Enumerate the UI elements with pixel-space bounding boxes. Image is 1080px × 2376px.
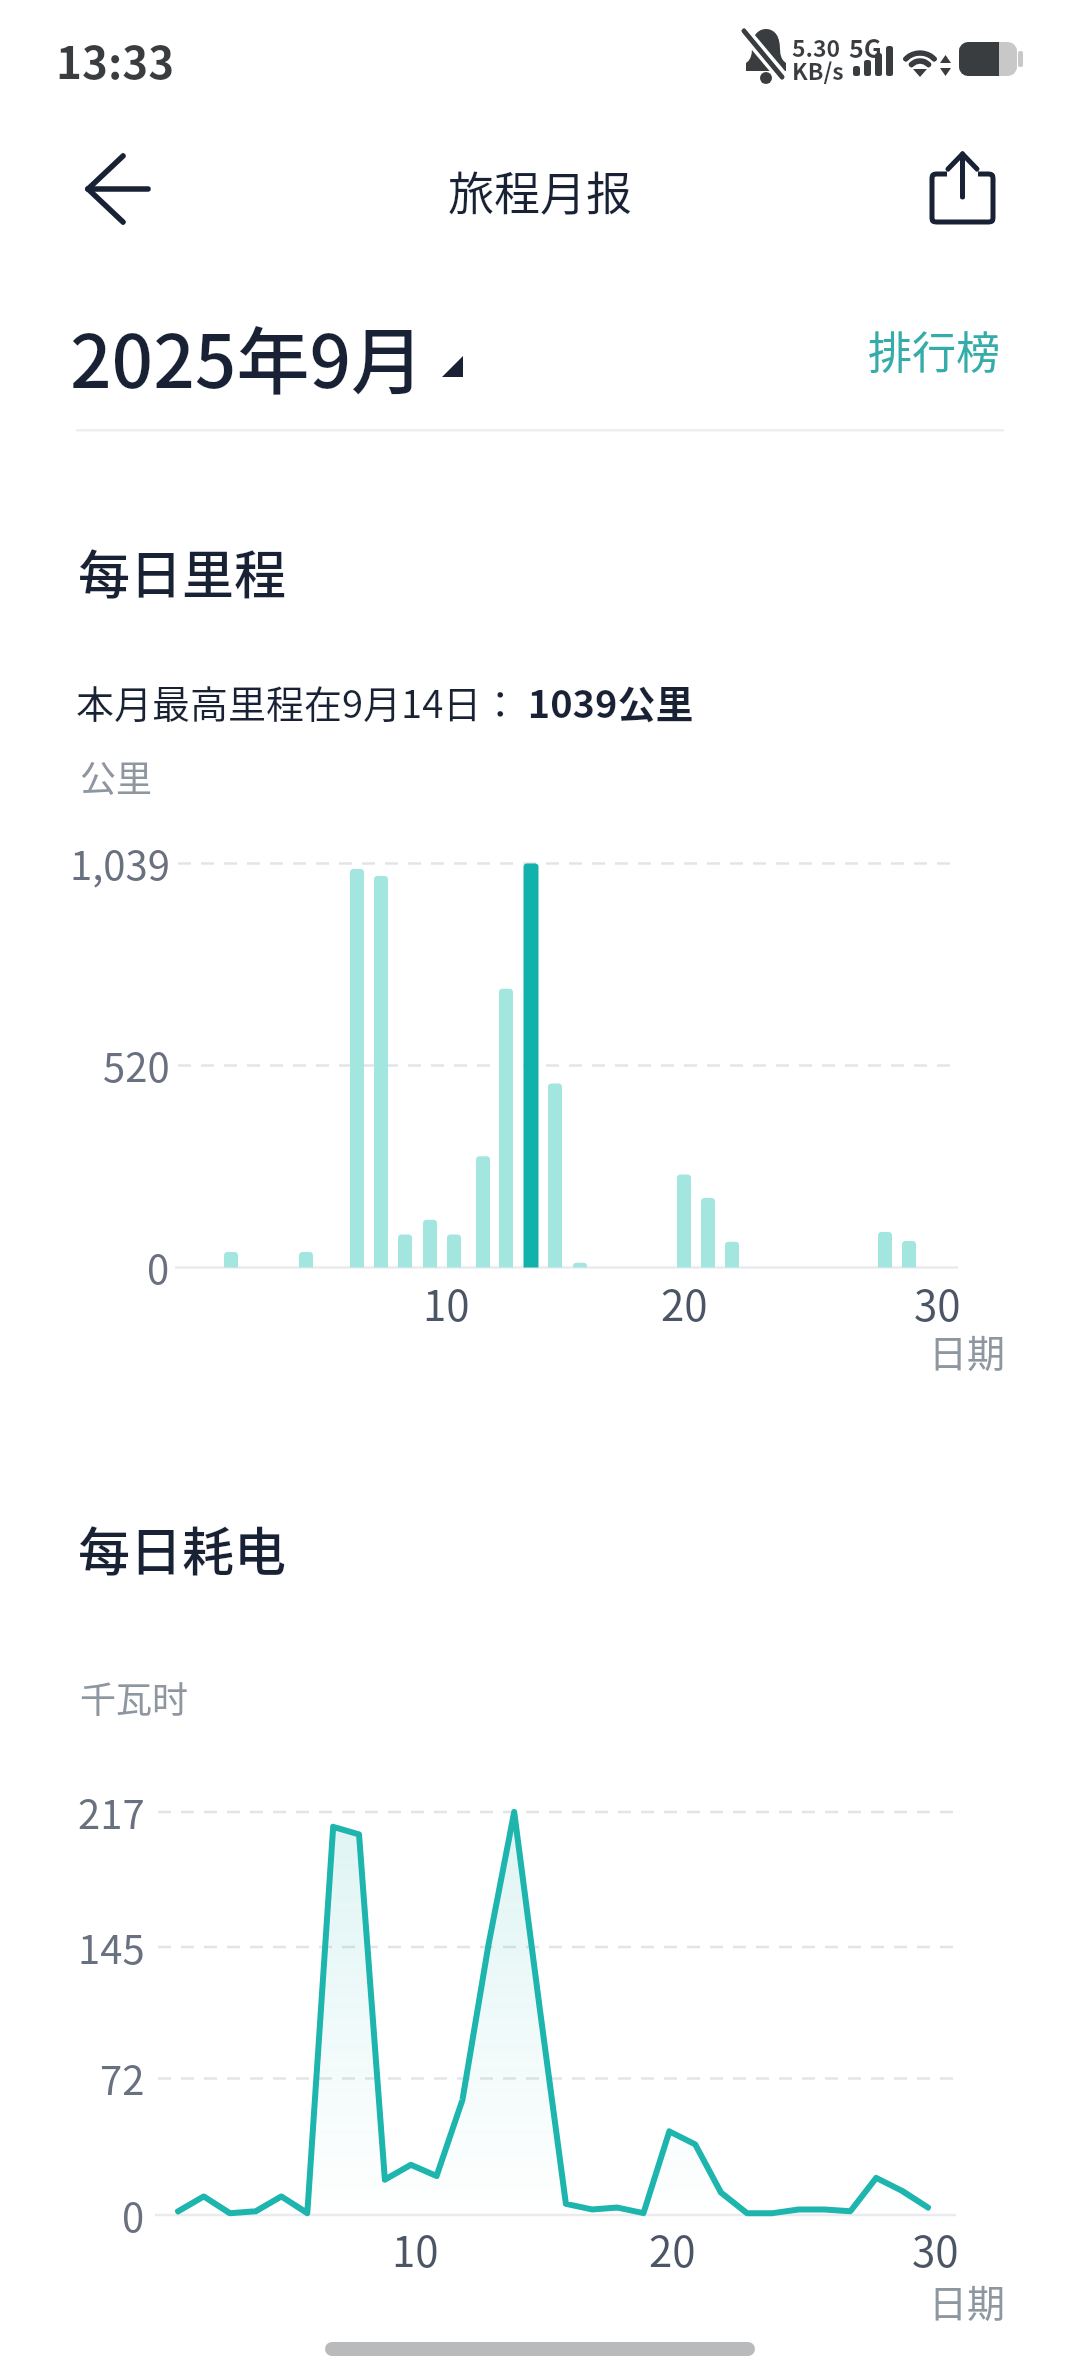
button[interactable] <box>60 140 170 240</box>
staticText: 20 <box>661 1272 708 1333</box>
staticText: 13:33 <box>56 28 175 92</box>
staticText: 千瓦时 <box>80 1671 189 1723</box>
staticText: 30 <box>914 1272 961 1333</box>
button[interactable] <box>70 300 470 410</box>
staticText: 20 <box>649 2218 696 2279</box>
button[interactable] <box>850 310 1010 390</box>
staticText: 72 <box>100 2049 145 2107</box>
staticText: 145 <box>78 1918 145 1976</box>
staticText: 10 <box>392 2218 439 2279</box>
staticText: 30 <box>912 2218 959 2279</box>
staticText: 旅程月报 <box>448 157 632 224</box>
staticText: 217 <box>78 1783 145 1841</box>
staticText: 排行榜 <box>868 318 1000 382</box>
staticText: 1,039 <box>70 834 170 892</box>
staticText: 每日里程 <box>78 534 287 609</box>
staticText: 公里 <box>80 750 153 802</box>
button[interactable] <box>910 140 1020 240</box>
staticText: 10 <box>423 1272 470 1333</box>
staticText: 0 <box>122 2186 145 2244</box>
staticText: 520 <box>103 1036 170 1094</box>
staticText: 每日耗电 <box>78 1511 287 1586</box>
staticText: 5G <box>849 29 882 65</box>
staticText: 日期 <box>929 2273 1006 2328</box>
staticText: 日期 <box>929 1323 1006 1378</box>
staticText: 0 <box>147 1238 170 1296</box>
staticText: 本月最高里程在9月14日： 1039公里 <box>76 674 694 729</box>
staticText: 2025年9月 <box>70 303 425 409</box>
staticText: 5.30 KB/s <box>792 30 844 87</box>
